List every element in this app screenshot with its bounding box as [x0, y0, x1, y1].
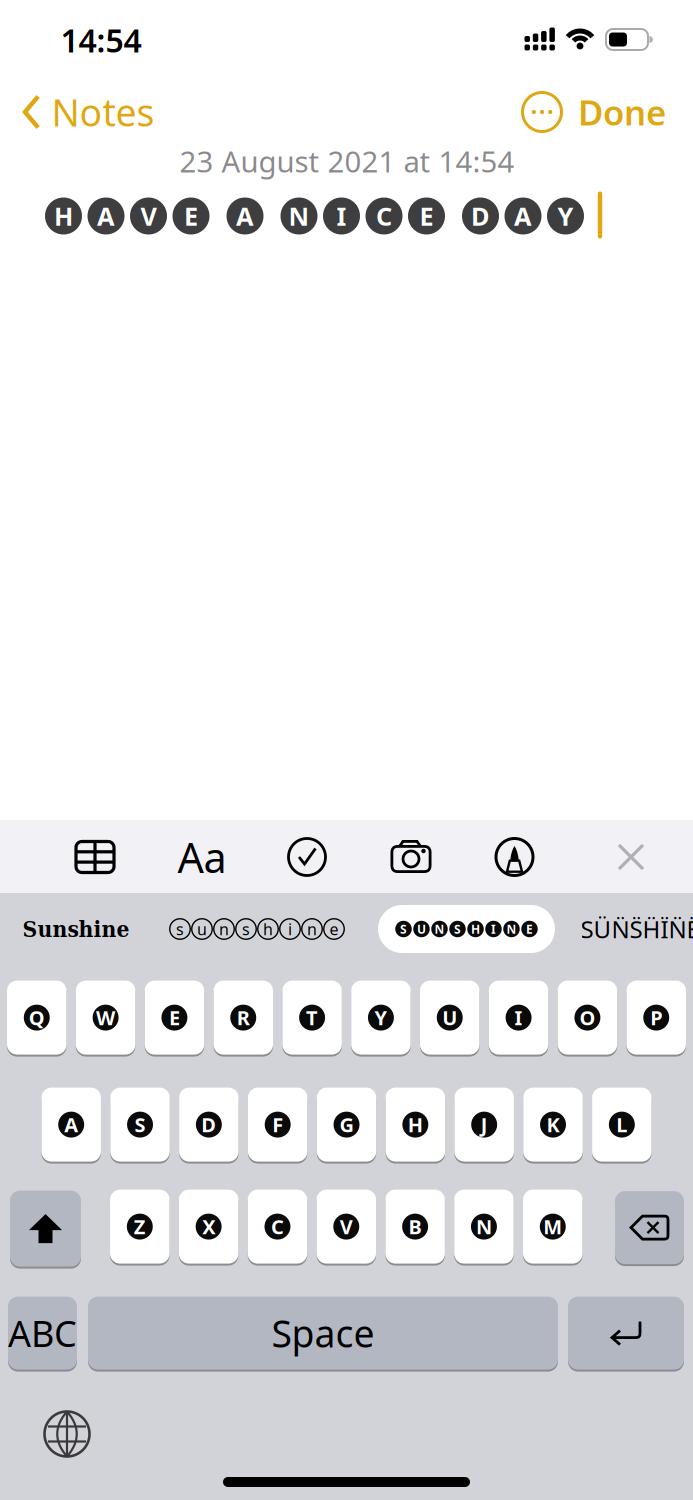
button[interactable]: R	[213, 980, 273, 1056]
button[interactable]: Sunshine	[22, 916, 129, 942]
button[interactable]: Space	[88, 1296, 558, 1371]
staticText: V	[340, 1213, 353, 1240]
staticText: h	[263, 918, 273, 940]
staticText: Y	[557, 199, 573, 233]
staticText: A	[97, 199, 115, 233]
staticText: 14:54	[60, 19, 141, 61]
button[interactable]: V	[316, 1189, 376, 1265]
staticText: E	[526, 921, 533, 937]
button[interactable]: Back to Notes	[22, 92, 158, 132]
button[interactable]: Q	[7, 980, 66, 1056]
button[interactable]: W	[76, 980, 135, 1056]
staticText: X	[202, 1213, 215, 1240]
staticText: U	[417, 921, 426, 937]
button[interactable]: Camera	[390, 840, 431, 874]
button[interactable]: I	[489, 980, 548, 1056]
staticText: e	[329, 918, 338, 940]
staticText: V	[140, 199, 156, 233]
staticText: E	[184, 199, 198, 233]
button[interactable]: A	[41, 1087, 101, 1163]
button[interactable]: s	[170, 918, 344, 940]
staticText: T	[306, 1004, 318, 1031]
button[interactable]: Dismiss keyboard	[617, 843, 644, 870]
staticText: N	[506, 921, 516, 937]
staticText: R	[237, 1004, 250, 1031]
button[interactable]: Next keyboard	[44, 1411, 89, 1456]
button[interactable]: Shift	[10, 1190, 81, 1268]
button[interactable]: Z	[110, 1189, 170, 1265]
button[interactable]: Checklist	[288, 838, 325, 875]
staticText: SÜN̈S̈ḦÏN̈Ë	[580, 913, 693, 945]
button[interactable]: Format	[177, 830, 226, 884]
staticText: A	[64, 1111, 78, 1138]
button[interactable]: C	[248, 1189, 307, 1265]
staticText: W	[96, 1004, 115, 1031]
staticText: G	[339, 1111, 353, 1138]
staticText: K	[546, 1111, 559, 1138]
button[interactable]: More	[522, 92, 561, 131]
staticText: u	[197, 918, 207, 940]
staticText: n	[307, 918, 317, 940]
button[interactable]: Markup	[496, 838, 533, 875]
staticText: N	[434, 921, 444, 937]
button[interactable]: Switch to letters	[8, 1296, 77, 1371]
button[interactable]: L	[592, 1087, 652, 1163]
staticText: Y	[374, 1004, 387, 1031]
button[interactable]: F	[248, 1087, 307, 1163]
staticText: I	[336, 199, 346, 233]
staticText: Notes	[51, 87, 154, 137]
staticText: J	[481, 1111, 488, 1138]
staticText: I	[515, 1004, 523, 1031]
staticText: E	[419, 199, 433, 233]
staticText: O	[579, 1004, 595, 1031]
button[interactable]: G	[317, 1087, 376, 1163]
button[interactable]: B	[385, 1189, 445, 1265]
staticText: s	[176, 918, 184, 940]
staticText: s	[242, 918, 250, 940]
staticText: H	[408, 1111, 423, 1138]
button[interactable]: S	[110, 1087, 170, 1163]
staticText: H	[54, 199, 73, 233]
staticText: D	[201, 1111, 216, 1138]
button[interactable]: P	[626, 980, 686, 1056]
staticText: Space	[271, 1308, 374, 1358]
button[interactable]: T	[282, 980, 342, 1056]
staticText: S	[454, 921, 461, 937]
staticText: B	[409, 1213, 422, 1240]
staticText: S	[400, 921, 407, 937]
button[interactable]: E	[145, 980, 204, 1056]
staticText: D	[471, 199, 490, 233]
staticText: A	[236, 199, 254, 233]
button[interactable]: U	[420, 980, 479, 1056]
staticText: L	[616, 1111, 627, 1138]
button[interactable]: Done	[578, 89, 666, 135]
staticText: C	[376, 199, 392, 233]
staticText: I	[491, 921, 496, 937]
staticText: P	[650, 1004, 662, 1031]
staticText: Aa	[177, 830, 226, 884]
staticText: H	[471, 921, 480, 937]
staticText: N	[288, 199, 309, 233]
button[interactable]: O	[558, 980, 617, 1056]
staticText: 23 August 2021 at 14:54	[179, 141, 514, 180]
staticText: Z	[134, 1213, 146, 1240]
button[interactable]: S	[378, 905, 555, 953]
staticText: n	[219, 918, 229, 940]
staticText: A	[514, 199, 532, 233]
staticText: Q	[29, 1004, 45, 1031]
button[interactable]: Delete	[615, 1190, 684, 1265]
staticText: S	[134, 1111, 145, 1138]
staticText: U	[442, 1004, 457, 1031]
button[interactable]: M	[523, 1189, 582, 1265]
button[interactable]: H	[386, 1087, 445, 1163]
button[interactable]: N	[454, 1189, 514, 1265]
button[interactable]: X	[179, 1189, 238, 1265]
button[interactable]: Y	[351, 980, 411, 1056]
button[interactable]: Table	[76, 841, 114, 872]
button[interactable]: D	[179, 1087, 239, 1163]
staticText: F	[272, 1111, 283, 1138]
button[interactable]: K	[523, 1087, 583, 1163]
button[interactable]: Return	[568, 1296, 684, 1371]
button[interactable]: SÜN̈S̈ḦÏN̈Ë	[580, 913, 693, 945]
button[interactable]: J	[454, 1087, 514, 1163]
